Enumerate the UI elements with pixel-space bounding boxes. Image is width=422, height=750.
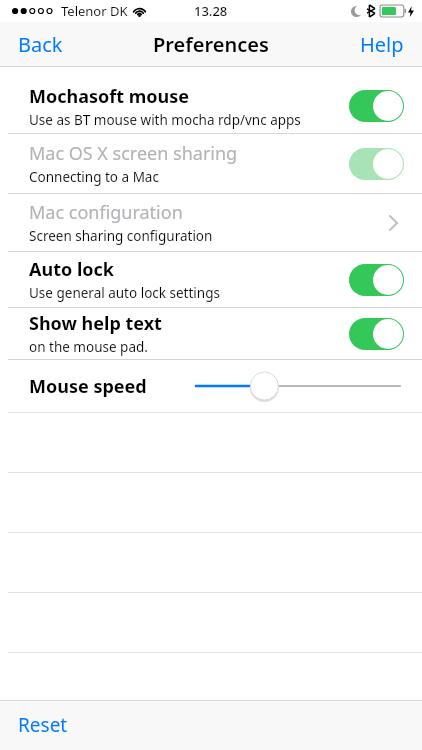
staticText: Auto lock: [29, 257, 114, 282]
button[interactable]: Toggle: [349, 148, 404, 180]
button[interactable]: Mac configuration: [0, 194, 422, 251]
button[interactable]: Back: [0, 23, 81, 66]
staticText: Help: [360, 31, 404, 58]
staticText: Connecting to a Mac: [29, 168, 159, 186]
button[interactable]: Mac OS X screen sharing: [0, 134, 422, 193]
staticText: Use general auto lock settings: [29, 284, 220, 302]
button[interactable]: Toggle: [349, 90, 404, 122]
staticText: on the mouse pad.: [29, 338, 148, 356]
staticText: Mac configuration: [29, 200, 183, 225]
button[interactable]: Mochasoft mouse: [0, 79, 422, 133]
staticText: Preferences: [153, 31, 269, 58]
button[interactable]: Mouse speed slider: [188, 366, 408, 406]
button[interactable]: Show help text: [0, 308, 422, 359]
staticText: Reset: [18, 712, 68, 738]
staticText: Back: [18, 31, 63, 58]
button[interactable]: Toggle: [349, 264, 404, 296]
staticText: Show help text: [29, 311, 162, 336]
staticText: Screen sharing configuration: [29, 227, 213, 245]
button[interactable]: Reset: [0, 702, 86, 748]
other: Open Mac configuration: [382, 212, 404, 234]
button[interactable]: Help: [342, 23, 422, 66]
staticText: Mouse speed: [29, 374, 147, 399]
staticText: Telenor DK: [61, 2, 128, 20]
staticText: Mac OS X screen sharing: [29, 141, 238, 166]
button[interactable]: Auto lock: [0, 252, 422, 307]
button[interactable]: Toggle: [349, 318, 404, 350]
staticText: Use as BT mouse with mocha rdp/vnc apps: [29, 111, 301, 129]
staticText: Mochasoft mouse: [29, 84, 190, 109]
staticText: 13.28: [194, 2, 228, 20]
